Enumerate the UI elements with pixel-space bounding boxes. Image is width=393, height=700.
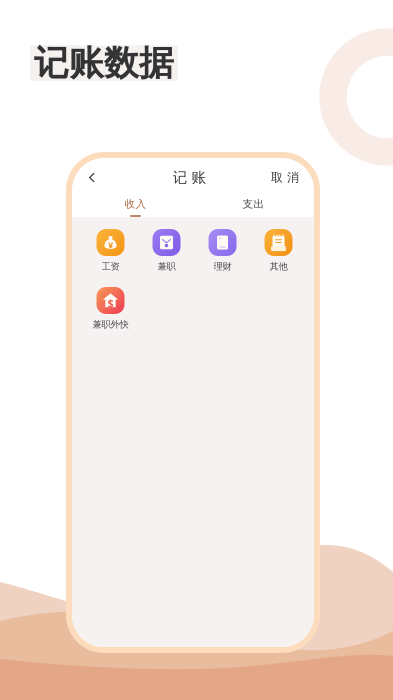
staticText: 兼职 bbox=[157, 261, 175, 272]
button[interactable]: 支出 bbox=[193, 189, 314, 217]
button[interactable]: 收入 bbox=[72, 189, 193, 217]
button[interactable]: Back bbox=[80, 161, 100, 185]
button[interactable]: 取 消 bbox=[278, 161, 306, 185]
staticText: 支出 bbox=[242, 197, 264, 210]
button[interactable]: 理财 bbox=[194, 229, 250, 276]
staticText: ¥ bbox=[108, 239, 113, 251]
staticText: 工资 bbox=[101, 261, 119, 272]
staticText: 记 账 bbox=[172, 168, 206, 186]
staticText: 其他 bbox=[269, 261, 287, 272]
staticText: 收入 bbox=[124, 197, 146, 210]
button[interactable]: 兼职 bbox=[138, 229, 194, 276]
button[interactable]: $ bbox=[82, 287, 138, 334]
staticText: 理财 bbox=[213, 261, 231, 272]
staticText: $ bbox=[107, 296, 113, 310]
staticText: 取 消 bbox=[271, 170, 299, 185]
button[interactable]: 其他 bbox=[250, 229, 306, 276]
button[interactable]: ¥ bbox=[82, 229, 138, 276]
staticText: 兼职外快 bbox=[92, 319, 128, 330]
staticText: 记账数据 bbox=[34, 42, 174, 85]
